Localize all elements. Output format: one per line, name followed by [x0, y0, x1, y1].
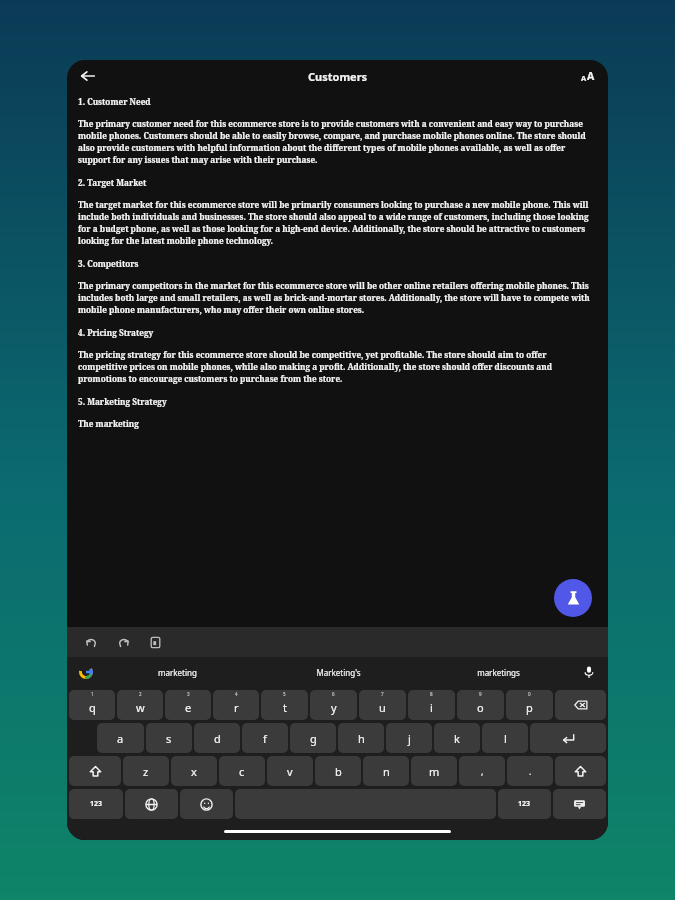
staticText: Marketing's [316, 667, 361, 678]
staticText: 7 [381, 691, 384, 697]
button[interactable]: Change language [125, 789, 178, 819]
button[interactable]: , [459, 756, 505, 786]
button[interactable]: j [386, 723, 432, 753]
button[interactable]: marketings [418, 657, 578, 687]
staticText: a [117, 731, 124, 746]
staticText: The primary customer need for this ecomm… [78, 118, 597, 165]
button[interactable]: Backspace [555, 690, 606, 720]
staticText: 8 [430, 691, 433, 697]
staticText: 4 [235, 691, 238, 697]
staticText: w [136, 700, 145, 715]
staticText: p [526, 700, 533, 715]
staticText: s [166, 731, 172, 746]
staticText: b [335, 764, 342, 779]
button[interactable]: s [146, 723, 192, 753]
staticText: t [283, 700, 287, 715]
button[interactable]: m [411, 756, 457, 786]
button[interactable]: Back [73, 61, 103, 91]
staticText: n [383, 764, 390, 779]
staticText: 5. Marketing Strategy [78, 396, 167, 407]
button[interactable]: w [117, 690, 163, 720]
button[interactable]: . [507, 756, 553, 786]
staticText: Customers [308, 69, 368, 84]
button[interactable]: Undo [79, 630, 103, 654]
button[interactable]: Voice input [578, 661, 600, 683]
staticText: 4. Pricing Strategy [78, 327, 154, 338]
staticText: z [143, 764, 149, 779]
staticText: 1. Customer Need [78, 96, 151, 107]
staticText: The pricing strategy for this ecommerce … [78, 349, 597, 384]
button[interactable]: v [267, 756, 313, 786]
staticText: k [454, 731, 460, 746]
button[interactable]: e [165, 690, 211, 720]
button[interactable]: y [310, 690, 357, 720]
button[interactable]: d [194, 723, 240, 753]
staticText: o [477, 700, 484, 715]
button[interactable]: Redo [111, 630, 135, 654]
button[interactable]: Shift [555, 756, 606, 786]
staticText: marketing [158, 667, 197, 678]
staticText: u [379, 700, 386, 715]
button[interactable]: p [506, 690, 553, 720]
staticText: , [481, 765, 484, 777]
button[interactable]: n [363, 756, 409, 786]
staticText: d [214, 731, 221, 746]
button[interactable]: k [434, 723, 480, 753]
staticText: x [191, 764, 197, 779]
staticText: 123 [518, 799, 531, 809]
button[interactable]: AI assistant [554, 579, 592, 617]
button[interactable]: Keyboard options [553, 789, 606, 819]
button[interactable]: Text size [574, 62, 602, 90]
button[interactable]: z [123, 756, 169, 786]
button[interactable]: Marketing's [258, 657, 418, 687]
staticText: 1 [91, 691, 94, 697]
staticText: The target market for this ecommerce sto… [78, 199, 597, 246]
staticText: c [239, 764, 245, 779]
staticText: A [581, 73, 587, 83]
button[interactable]: a [97, 723, 144, 753]
staticText: e [185, 700, 192, 715]
button[interactable]: u [359, 690, 406, 720]
staticText: f [263, 731, 267, 746]
button[interactable]: o [457, 690, 504, 720]
button[interactable]: q [69, 690, 115, 720]
staticText: q [89, 700, 96, 715]
button[interactable]: f [242, 723, 288, 753]
staticText: marketings [477, 667, 520, 678]
staticText: 123 [90, 799, 103, 809]
button[interactable]: Google [75, 661, 97, 683]
button[interactable]: r [213, 690, 259, 720]
staticText: 3. Competitors [78, 258, 139, 269]
staticText: 9 [479, 691, 482, 697]
staticText: 2 [139, 691, 142, 697]
button[interactable]: Emoji [180, 789, 233, 819]
button[interactable]: h [338, 723, 384, 753]
staticText: i [430, 700, 433, 715]
staticText: The primary competitors in the market fo… [78, 280, 597, 315]
button[interactable]: i [408, 690, 455, 720]
button[interactable]: Shift [69, 756, 121, 786]
staticText: j [408, 731, 411, 746]
button[interactable]: x [171, 756, 217, 786]
staticText: h [358, 731, 365, 746]
button[interactable]: l [482, 723, 528, 753]
button[interactable]: b [315, 756, 361, 786]
button[interactable]: Numbers [498, 789, 551, 819]
button[interactable]: Numbers [69, 789, 123, 819]
button[interactable]: Paste [143, 630, 167, 654]
button[interactable]: g [290, 723, 336, 753]
button[interactable]: marketing [97, 657, 258, 687]
staticText: 2. Target Market [78, 177, 147, 188]
staticText: v [287, 764, 293, 779]
staticText: l [504, 731, 507, 746]
button[interactable]: c [219, 756, 265, 786]
staticText: r [234, 700, 239, 715]
staticText: m [429, 764, 440, 779]
staticText: . [529, 765, 532, 777]
staticText: 5 [283, 691, 286, 697]
staticText: y [331, 700, 337, 715]
staticText: A [587, 69, 595, 83]
button[interactable]: t [261, 690, 308, 720]
button[interactable]: Enter [530, 723, 606, 753]
